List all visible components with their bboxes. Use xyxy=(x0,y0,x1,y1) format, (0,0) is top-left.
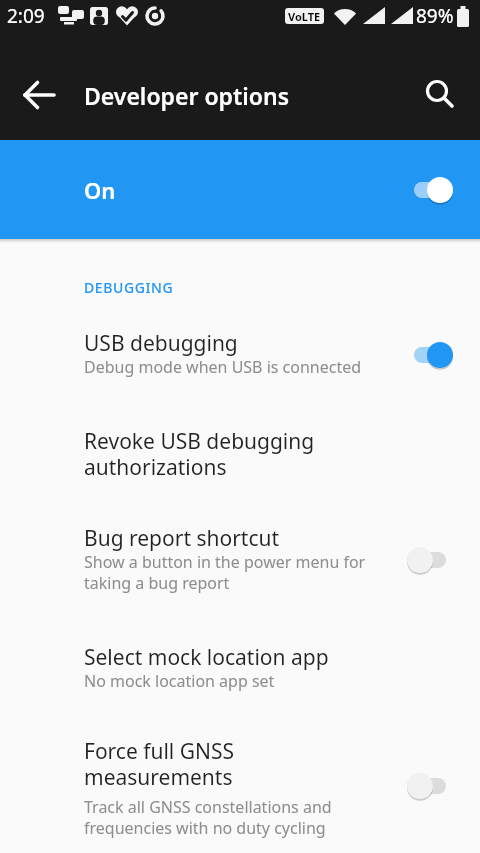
staticText: Debug mode when USB is connected xyxy=(84,356,362,378)
button[interactable]: USB debugging xyxy=(0,329,480,380)
button[interactable] xyxy=(407,546,453,574)
button[interactable] xyxy=(416,71,464,119)
staticText: No mock location app set xyxy=(84,670,275,692)
staticText: 2:09 xyxy=(7,3,45,29)
staticText: Select mock location app xyxy=(84,643,329,672)
button[interactable] xyxy=(407,176,453,204)
button[interactable] xyxy=(407,341,453,369)
button[interactable]: Select mock location app xyxy=(0,643,480,694)
staticText: Show a button in the power menu for taki… xyxy=(84,551,366,594)
button[interactable]: Revoke USB debugging authorizations xyxy=(0,427,480,482)
button[interactable] xyxy=(14,71,62,119)
staticText: VoLTE xyxy=(288,9,321,24)
staticText: DEBUGGING xyxy=(84,278,174,297)
staticText: Developer options xyxy=(84,80,290,111)
staticText: Track all GNSS constellations and freque… xyxy=(84,796,332,839)
button[interactable]: Force full GNSS measurements xyxy=(0,737,480,835)
button[interactable]: Bug report shortcut xyxy=(0,524,480,596)
staticText: Revoke USB debugging authorizations xyxy=(84,427,315,482)
button[interactable]: On xyxy=(0,140,480,239)
staticText: Force full GNSS measurements xyxy=(84,737,235,792)
staticText: USB debugging xyxy=(84,329,238,358)
button[interactable] xyxy=(407,772,453,800)
staticText: Bug report shortcut xyxy=(84,524,280,553)
staticText: On xyxy=(84,175,116,205)
staticText: 89% xyxy=(416,3,454,29)
